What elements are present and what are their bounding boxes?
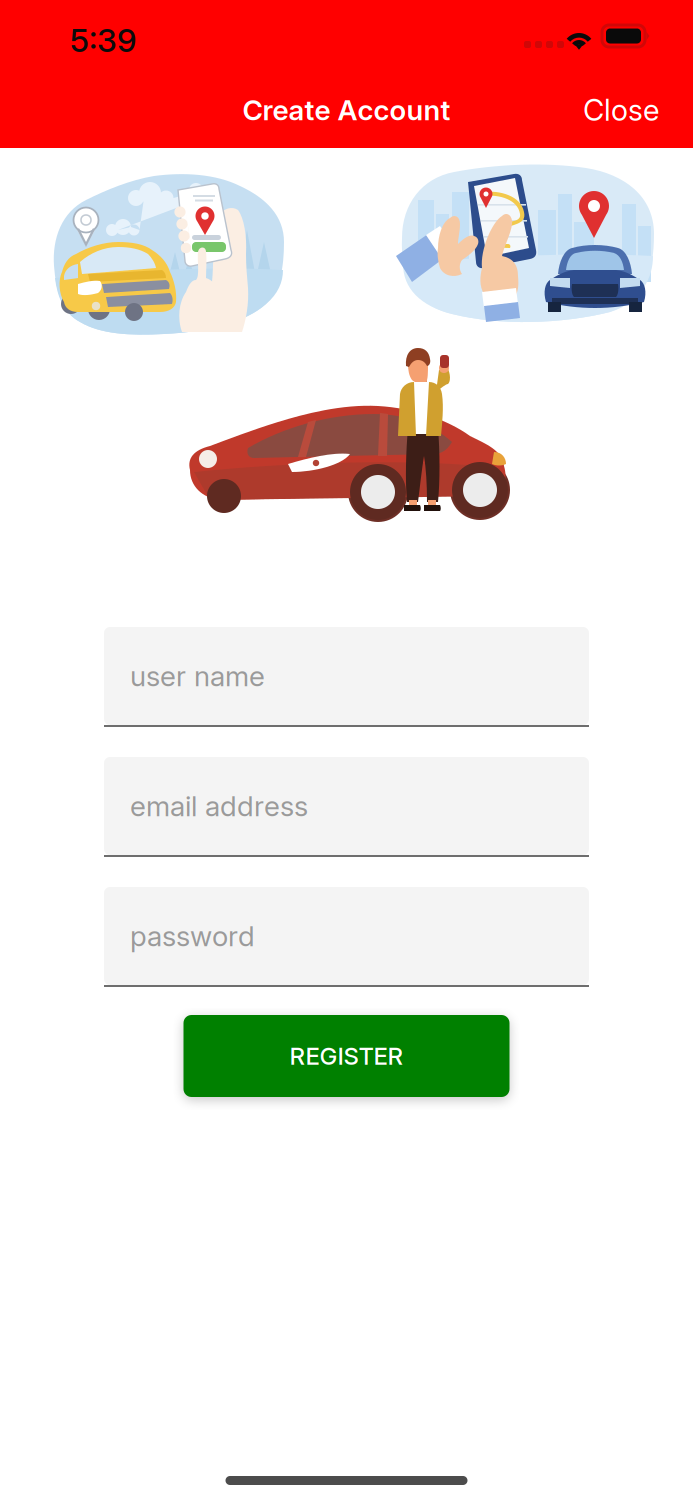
button[interactable]: Close [571,84,671,136]
staticText: password [130,919,255,953]
button[interactable]: password [104,887,589,987]
button[interactable]: user name [104,627,589,727]
staticText: user name [130,659,265,693]
staticText: email address [130,789,308,823]
staticText: Close [583,92,659,128]
staticText: Create Account [242,93,450,127]
staticText: 5:39 [70,21,137,60]
staticText: REGISTER [289,1041,403,1070]
button[interactable]: REGISTER [183,1015,509,1097]
button[interactable]: email address [104,757,589,857]
